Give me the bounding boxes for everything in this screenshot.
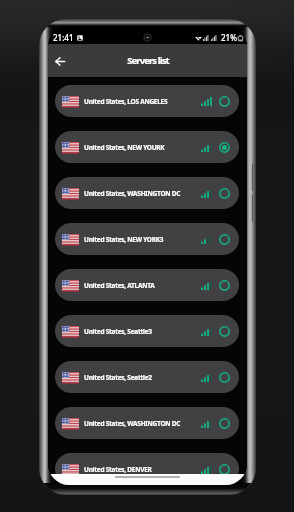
- staticText: 21%: [221, 32, 237, 43]
- button[interactable]: United States, NEW YORK3: [55, 223, 239, 255]
- button[interactable]: Back: [49, 50, 71, 72]
- button[interactable]: Select server: [218, 325, 230, 337]
- button[interactable]: Select server: [218, 463, 230, 475]
- button[interactable]: Selected server: [218, 141, 230, 153]
- button[interactable]: Select server: [218, 417, 230, 429]
- button[interactable]: United States, DENVER: [55, 453, 239, 485]
- staticText: 21:41: [53, 32, 74, 43]
- button[interactable]: Select server: [218, 187, 230, 199]
- button[interactable]: United States, NEW YOURK: [55, 131, 239, 163]
- staticText: United States, WASHINGTON DC: [84, 419, 181, 428]
- staticText: United States, Seattle2: [84, 373, 152, 382]
- button[interactable]: Select server: [218, 233, 230, 245]
- staticText: United States, LOS ANGELES: [84, 97, 168, 106]
- button[interactable]: United States, LOS ANGELES: [55, 85, 239, 117]
- staticText: United States, ATLANTA: [84, 281, 155, 290]
- staticText: United States, DENVER: [84, 465, 152, 474]
- staticText: United States, WASHINGTON DC: [84, 189, 181, 198]
- staticText: United States, NEW YOURK: [84, 143, 165, 152]
- staticText: United States, NEW YORK3: [84, 235, 164, 244]
- staticText: Servers list: [127, 54, 169, 67]
- button[interactable]: United States, Seattle3: [55, 315, 239, 347]
- button[interactable]: Select server: [218, 371, 230, 383]
- button[interactable]: United States, WASHINGTON DC: [55, 177, 239, 209]
- button[interactable]: United States, Seattle2: [55, 361, 239, 393]
- button[interactable]: United States, WASHINGTON DC: [55, 407, 239, 439]
- button[interactable]: Select server: [218, 95, 230, 107]
- button[interactable]: Select server: [218, 279, 230, 291]
- button[interactable]: United States, ATLANTA: [55, 269, 239, 301]
- staticText: United States, Seattle3: [84, 327, 152, 336]
